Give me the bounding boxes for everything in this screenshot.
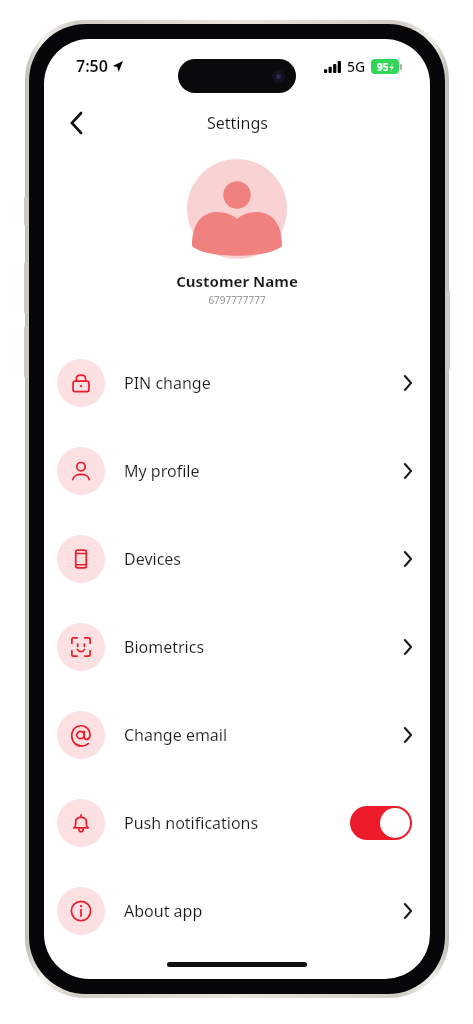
button[interactable]: Back — [54, 105, 98, 141]
button[interactable]: Change email — [44, 691, 430, 779]
button[interactable]: Devices — [44, 515, 430, 603]
staticText: Biometrics — [124, 636, 404, 658]
staticText: Settings — [207, 112, 268, 134]
staticText: Change email — [124, 724, 404, 746]
staticText: 6797777777 — [208, 293, 266, 307]
staticText: 95 — [377, 60, 389, 74]
button[interactable]: Biometrics — [44, 603, 430, 691]
button[interactable]: Push notifications — [44, 779, 430, 867]
staticText: About app — [124, 900, 404, 922]
button[interactable]: My profile — [44, 427, 430, 515]
staticText: Push notifications — [124, 812, 350, 834]
staticText: PIN change — [124, 372, 404, 394]
button[interactable]: Push notifications toggle — [350, 806, 412, 840]
staticText: 7:50 — [76, 55, 108, 77]
staticText: Customer Name — [176, 271, 298, 291]
staticText: Devices — [124, 548, 404, 570]
staticText: 5G — [347, 57, 366, 76]
button[interactable]: About app — [44, 867, 430, 955]
button[interactable]: PIN change — [44, 339, 430, 427]
staticText: My profile — [124, 460, 404, 482]
